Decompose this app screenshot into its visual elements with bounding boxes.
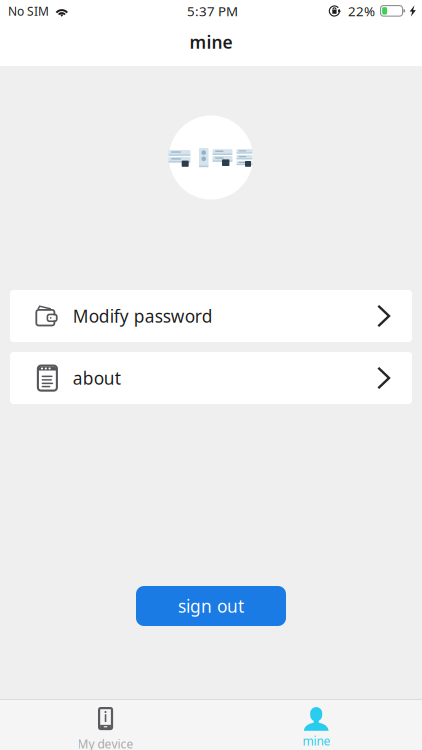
staticText: 5:37 PM: [187, 2, 238, 20]
staticText: mine: [189, 30, 232, 53]
staticText: Modify password: [73, 304, 213, 327]
button[interactable]: Modify password: [0, 290, 422, 342]
staticText: mine: [302, 733, 330, 749]
button[interactable]: My device: [0, 700, 211, 750]
staticText: 22%: [348, 2, 375, 20]
staticText: No SIM: [8, 3, 49, 19]
staticText: sign out: [178, 594, 244, 617]
button[interactable]: about: [0, 352, 422, 404]
staticText: about: [73, 366, 121, 389]
staticText: My device: [77, 736, 133, 750]
button[interactable]: mine: [211, 700, 422, 750]
button[interactable]: sign out: [136, 586, 286, 626]
